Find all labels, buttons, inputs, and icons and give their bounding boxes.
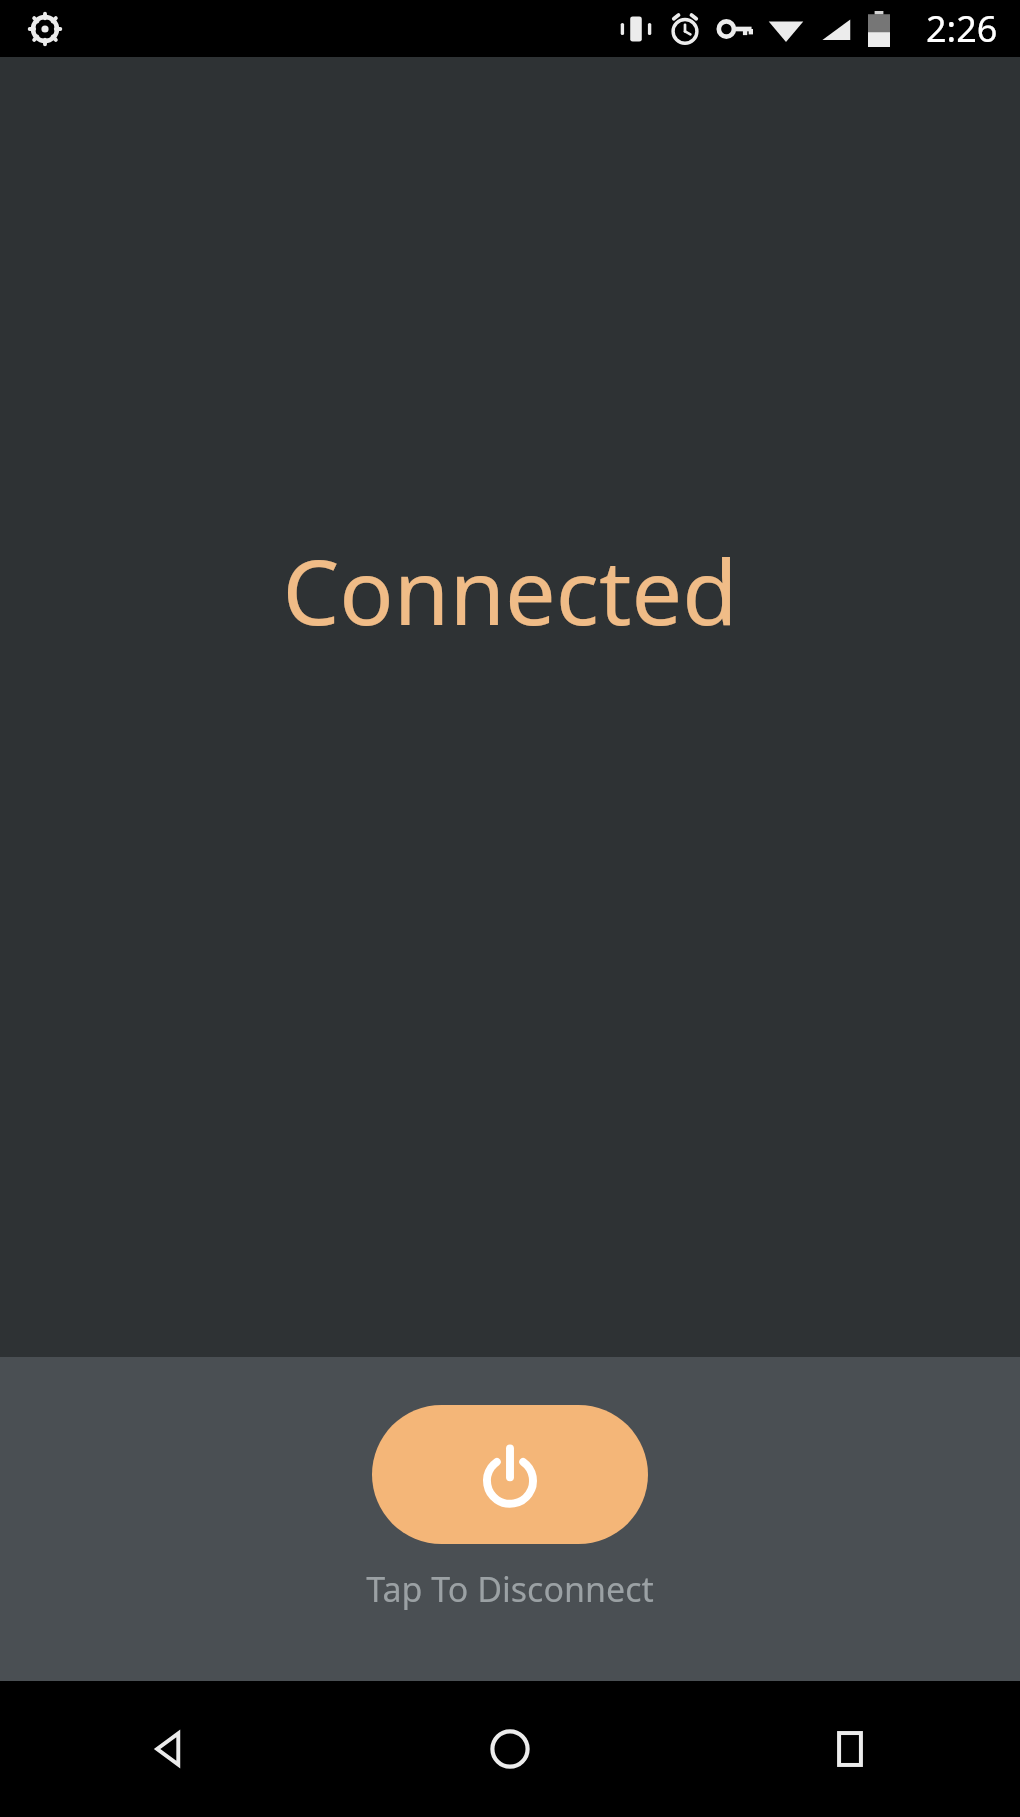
button[interactable]: Recent apps	[680, 1681, 1020, 1817]
staticText: 2:26	[926, 4, 998, 53]
staticText: Connected	[282, 529, 738, 652]
button[interactable]: Tap To Disconnect	[372, 1405, 648, 1544]
button[interactable]: Home	[340, 1681, 680, 1817]
button[interactable]: Back	[0, 1681, 340, 1817]
button[interactable]: Tap To Disconnect	[366, 1566, 654, 1612]
